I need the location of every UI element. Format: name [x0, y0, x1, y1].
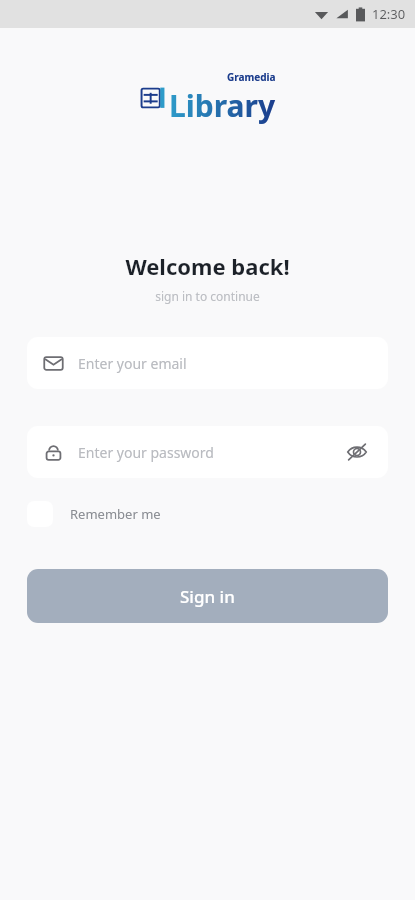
button[interactable]: Sign in — [27, 569, 388, 623]
button[interactable]: Enter your email — [27, 337, 388, 389]
staticText: sign in to continue — [0, 288, 415, 304]
button[interactable]: Enter your password — [27, 426, 388, 478]
staticText: Welcome back! — [0, 251, 415, 281]
staticText: Enter your password — [78, 443, 214, 462]
staticText: Gramedia — [227, 70, 276, 84]
staticText: Enter your email — [78, 354, 187, 373]
button[interactable]: Remember me — [27, 501, 161, 527]
staticText: Sign in — [180, 585, 235, 608]
staticText: 12:30 — [372, 5, 406, 23]
staticText: Library — [169, 85, 276, 126]
staticText: Remember me — [70, 505, 161, 523]
button[interactable]: Show password — [342, 437, 372, 467]
